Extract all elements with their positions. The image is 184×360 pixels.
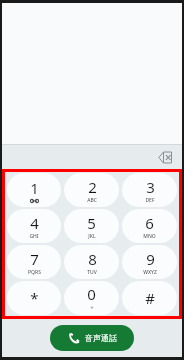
- staticText: GHI: [29, 233, 39, 240]
- staticText: JKL: [88, 233, 96, 240]
- button[interactable]: 2: [64, 173, 119, 207]
- button[interactable]: 音声通話: [50, 325, 134, 351]
- button[interactable]: 3: [122, 173, 177, 207]
- staticText: 0: [87, 284, 96, 304]
- button[interactable]: 7: [7, 245, 61, 279]
- button[interactable]: 9: [122, 245, 177, 279]
- button[interactable]: 1: [7, 173, 61, 207]
- staticText: DEF: [145, 197, 155, 204]
- staticText: 6: [145, 213, 154, 233]
- staticText: 5: [87, 213, 96, 233]
- staticText: 音声通話: [85, 333, 117, 343]
- staticText: 8: [88, 249, 97, 269]
- staticText: MNO: [143, 233, 156, 240]
- button[interactable]: 0: [64, 281, 119, 315]
- staticText: 7: [30, 249, 39, 269]
- staticText: #: [145, 288, 155, 308]
- staticText: ABC: [87, 197, 97, 204]
- button[interactable]: Backspace: [154, 146, 176, 168]
- button[interactable]: 4: [7, 209, 61, 243]
- button[interactable]: 8: [64, 245, 119, 279]
- staticText: 3: [146, 177, 155, 197]
- button[interactable]: *: [7, 281, 61, 315]
- staticText: 1: [30, 178, 39, 198]
- button[interactable]: 5: [64, 209, 119, 243]
- staticText: 4: [30, 213, 39, 233]
- button[interactable]: 6: [122, 209, 177, 243]
- staticText: 9: [146, 249, 155, 269]
- staticText: WXYZ: [143, 269, 157, 276]
- staticText: 2: [88, 177, 97, 197]
- staticText: *: [30, 288, 39, 308]
- staticText: PQRS: [28, 269, 41, 276]
- staticText: TUV: [87, 269, 97, 276]
- button[interactable]: #: [122, 281, 177, 315]
- staticText: +: [90, 304, 94, 312]
